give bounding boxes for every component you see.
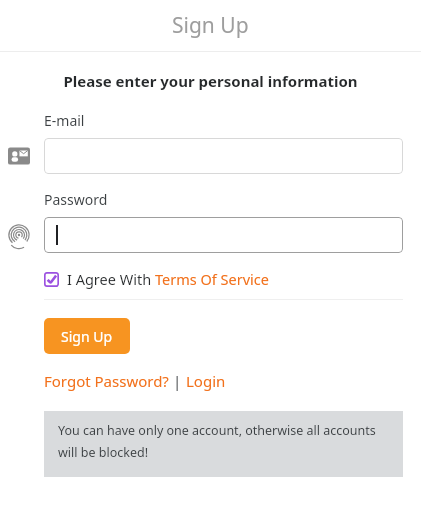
button[interactable]	[44, 217, 403, 253]
button[interactable]: Forgot Password?	[44, 371, 169, 391]
button[interactable]: Login	[186, 371, 226, 391]
other: Contact card	[7, 144, 31, 168]
button[interactable]	[44, 138, 403, 174]
staticText: Please enter your personal information	[63, 71, 358, 91]
staticText: E-mail	[44, 111, 85, 130]
staticText: I Agree With	[67, 269, 155, 289]
other: Fingerprint	[7, 223, 31, 247]
staticText: Password	[44, 190, 108, 209]
staticText: You can have only one account, otherwise…	[58, 422, 389, 461]
staticText: |	[169, 371, 186, 391]
button[interactable]: Sign Up	[44, 318, 130, 354]
staticText: Sign Up	[172, 11, 249, 40]
staticText: Sign Up	[61, 327, 113, 346]
button[interactable]: I Agree With	[44, 269, 269, 289]
button[interactable]: Terms Of Service	[155, 269, 269, 289]
